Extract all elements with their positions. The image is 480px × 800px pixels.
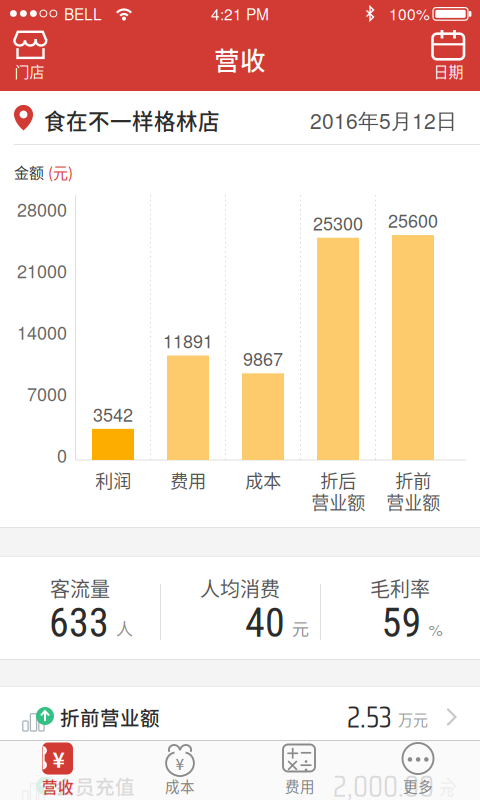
- staticText: 折前 营业额: [386, 469, 440, 512]
- staticText: 2.53: [347, 693, 392, 741]
- staticText: 万元: [398, 708, 428, 730]
- staticText: BELL: [64, 2, 102, 25]
- staticText: 更多: [403, 775, 433, 796]
- staticText: 元: [439, 777, 454, 799]
- staticText: 利润: [95, 469, 131, 491]
- staticText: 人均消费: [200, 573, 280, 602]
- staticText: ¥: [52, 743, 64, 774]
- staticText: 食在不一样格林店: [44, 104, 220, 135]
- staticText: 14000: [17, 319, 67, 345]
- staticText: 金额: [14, 161, 44, 183]
- staticText: 28000: [17, 196, 67, 222]
- staticText: %: [428, 617, 442, 640]
- staticText: 营收: [214, 40, 266, 77]
- staticText: 4:21 PM: [211, 2, 269, 25]
- staticText: 会员充值: [55, 772, 135, 800]
- staticText: 100%: [389, 2, 430, 25]
- staticText: 门店: [14, 60, 44, 82]
- staticText: 毛利率: [370, 573, 430, 602]
- staticText: 折后 营业额: [311, 469, 365, 512]
- staticText: 59: [381, 600, 421, 646]
- staticText: 费用: [285, 775, 315, 796]
- staticText: 25300: [313, 210, 363, 236]
- staticText: 11891: [163, 328, 213, 353]
- staticText: 40: [245, 600, 285, 646]
- staticText: 633: [49, 600, 109, 646]
- staticText: 2,000.00: [333, 762, 434, 800]
- staticText: 费用: [170, 469, 206, 491]
- staticText: 0: [57, 442, 67, 468]
- staticText: (元): [48, 161, 73, 183]
- staticText: 2016年5月12日: [310, 105, 457, 135]
- staticText: 成本: [165, 775, 195, 796]
- staticText: 营收: [42, 775, 74, 798]
- staticText: 元: [292, 616, 309, 640]
- staticText: 25600: [388, 207, 438, 233]
- staticText: 成本: [245, 469, 281, 491]
- staticText: 21000: [17, 258, 67, 283]
- staticText: 7000: [27, 381, 67, 406]
- staticText: 日期: [433, 60, 463, 82]
- staticText: ¥: [175, 753, 184, 774]
- staticText: 折前营业额: [60, 703, 160, 731]
- staticText: 人: [116, 616, 133, 640]
- staticText: 9867: [243, 345, 283, 371]
- staticText: 3542: [93, 401, 133, 427]
- staticText: 客流量: [50, 573, 110, 602]
